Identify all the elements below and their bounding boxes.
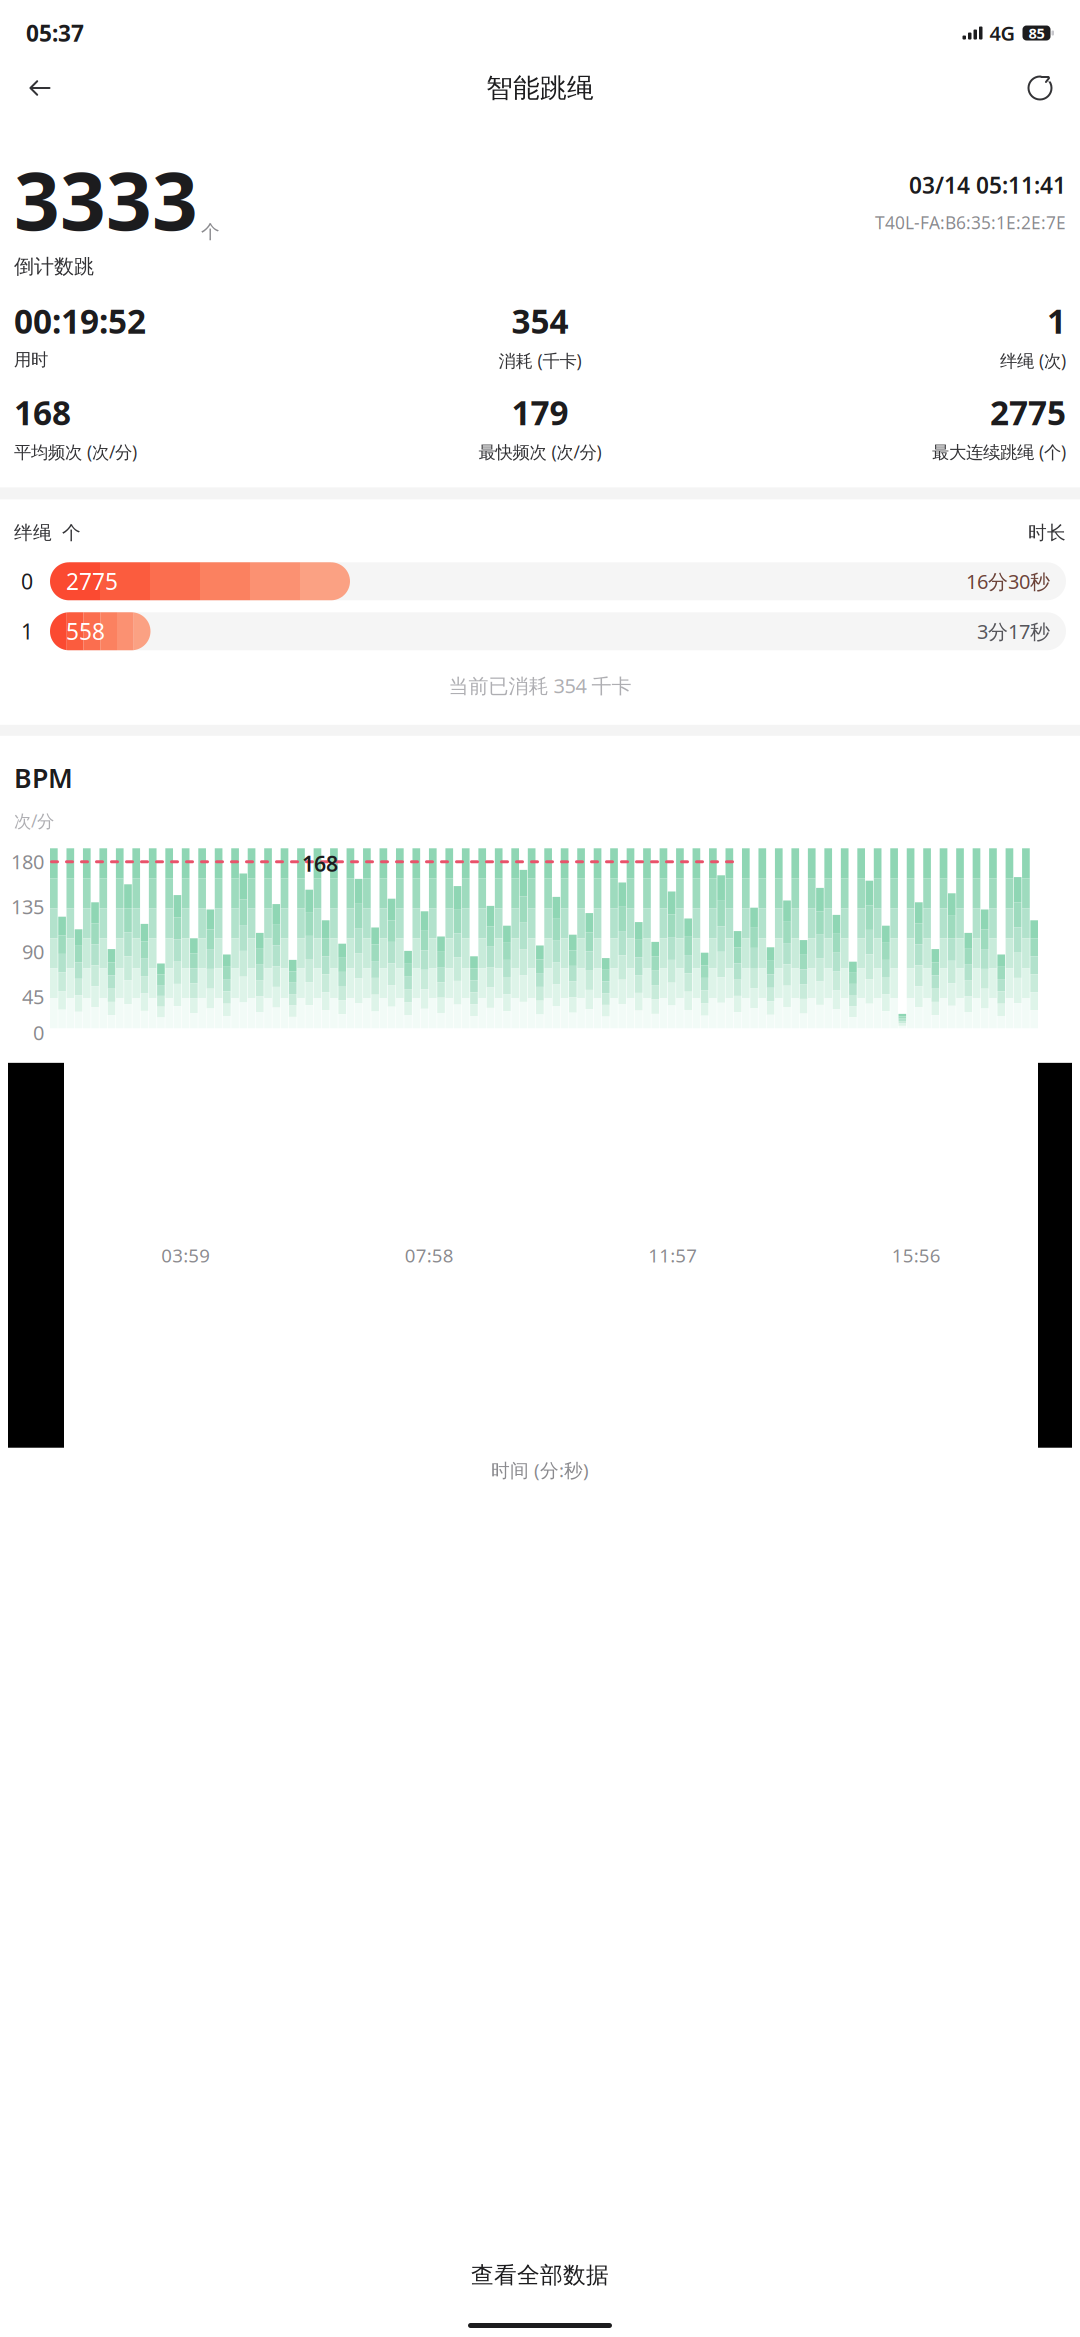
staticText: 最快频次 (次/分) [478,440,601,463]
staticText: 绊绳 (次) [1000,349,1066,372]
staticText: 3333 [14,146,198,252]
button[interactable]: 返回 [18,66,62,110]
staticText: 1 [21,617,33,645]
staticText: 90 [22,938,44,965]
staticText: 85 [1028,23,1044,43]
staticText: 智能跳绳 [486,72,594,104]
staticText: 绊绳 [14,521,52,544]
staticText: T40L-FA:B6:35:1E:2E:7E [875,211,1066,234]
staticText: 05:37 [26,18,84,48]
staticText: 1 [1047,299,1066,343]
staticText: 平均频次 (次/分) [14,440,137,463]
staticText: 次/分 [14,809,54,832]
staticText: 16分30秒 [966,568,1050,595]
staticText: 135 [11,893,44,920]
staticText: 0 [21,567,33,595]
staticText: 354 [511,299,568,343]
staticText: 时间 (分:秒) [491,1458,589,1482]
staticText: 0 [33,1019,44,1046]
staticText: 179 [511,390,568,434]
staticText: 168 [14,390,71,434]
staticText: 00:19:52 [14,299,146,343]
staticText: 45 [22,983,44,1010]
staticText: 3分17秒 [977,618,1050,645]
staticText: 15:56 [892,1243,941,1268]
staticText: 个 [201,220,220,243]
staticText: 2775 [990,390,1066,434]
staticText: 倒计数跳 [14,254,94,279]
staticText: 个 [62,521,81,544]
staticText: 168 [302,849,338,878]
staticText: 4G [989,20,1015,46]
staticText: 11:57 [648,1243,697,1268]
staticText: 用时 [14,349,48,370]
staticText: 消耗 (千卡) [498,349,581,372]
staticText: 最大连续跳绳 (个) [932,440,1066,463]
staticText: 查看全部数据 [471,2261,609,2289]
staticText: 2775 [66,566,118,596]
staticText: 558 [66,616,105,646]
button[interactable]: 查看全部数据 [0,2249,1080,2301]
staticText: 03/14 05:11:41 [909,170,1066,200]
staticText: 07:58 [405,1243,454,1268]
staticText: 180 [11,848,44,875]
staticText: 03:59 [161,1243,210,1268]
staticText: BPM [14,760,73,795]
button[interactable]: 刷新 [1018,66,1062,110]
staticText: 时长 [1028,521,1066,544]
staticText: 当前已消耗 354 千卡 [448,672,631,699]
